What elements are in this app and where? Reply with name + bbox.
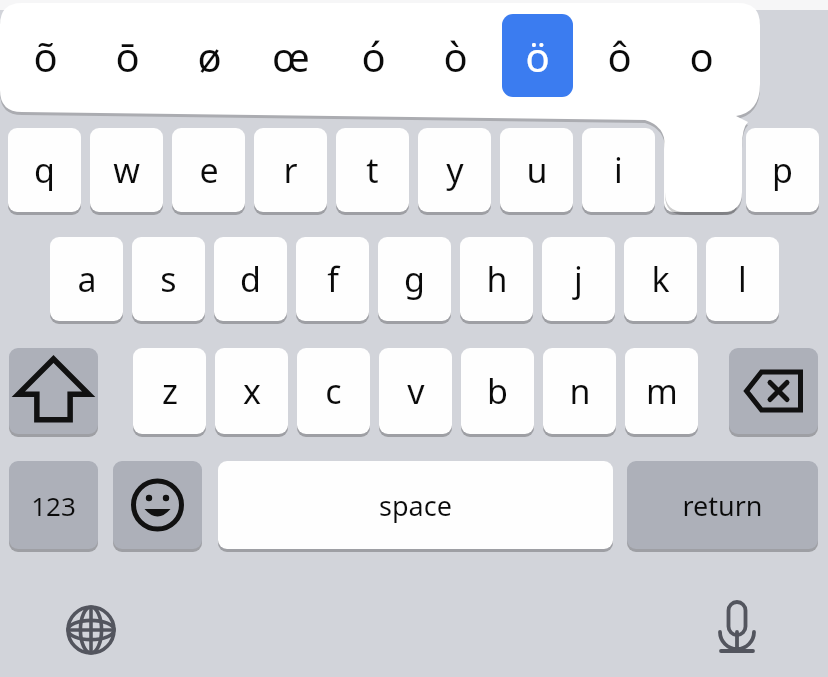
button[interactable]: w [90,128,163,212]
button[interactable]: Backspace [729,348,818,434]
button[interactable]: ò [419,14,491,97]
button[interactable]: l [706,237,779,321]
staticText: c [325,368,342,414]
staticText: v [407,368,425,414]
staticText: õ [33,29,58,83]
staticText: i [614,147,623,193]
staticText: e [199,147,219,193]
button[interactable]: y [418,128,491,212]
staticText: d [240,256,261,302]
staticText: return [682,487,763,524]
button[interactable]: p [746,128,819,212]
staticText: space [379,487,452,524]
staticText: ö [525,29,550,83]
button[interactable]: ø [173,14,245,97]
staticText: r [283,147,298,193]
button[interactable]: t [336,128,409,212]
button[interactable]: ó [337,14,409,97]
staticText: y [446,147,464,193]
button[interactable]: v [379,348,452,434]
button[interactable]: n [543,348,616,434]
button[interactable]: ö [501,14,573,97]
staticText: l [738,256,747,302]
staticText: m [646,368,678,414]
button[interactable]: f [296,237,369,321]
button[interactable]: b [461,348,534,434]
button[interactable]: i [582,128,655,212]
staticText: b [487,368,508,414]
staticText: j [574,256,583,302]
staticText: ô [607,29,632,83]
staticText: œ [272,29,310,83]
staticText: o [689,29,714,83]
button[interactable]: m [625,348,698,434]
staticText: k [651,256,670,302]
button[interactable]: h [460,237,533,321]
button[interactable]: e [172,128,245,212]
button[interactable]: d [214,237,287,321]
staticText: z [162,368,178,414]
staticText: p [772,147,793,193]
button[interactable] [664,128,737,212]
staticText: w [113,147,140,193]
button[interactable]: ô [583,14,655,97]
staticText: 123 [31,488,76,523]
staticText: ò [443,29,468,83]
button[interactable]: a [50,237,123,321]
staticText: ø [197,29,222,83]
staticText: s [160,256,177,302]
button[interactable]: Switch keyboard language [55,594,127,666]
button[interactable]: c [297,348,370,434]
staticText: t [366,147,379,193]
staticText: g [404,256,425,302]
button[interactable]: Dictation [701,592,773,664]
staticText: a [77,256,97,302]
button[interactable]: j [542,237,615,321]
button[interactable]: r [254,128,327,212]
button[interactable]: q [8,128,81,212]
staticText: x [243,368,261,414]
button[interactable]: œ [255,14,327,97]
staticText: ō [115,29,140,83]
button[interactable]: õ [9,14,81,97]
button[interactable] [502,14,573,97]
button[interactable]: o [665,14,737,97]
staticText: h [486,256,508,302]
button[interactable]: k [624,237,697,321]
staticText: ó [361,29,386,83]
button[interactable]: 123 [9,461,98,549]
button[interactable]: ō [91,14,163,97]
staticText: n [569,368,591,414]
staticText: u [526,147,548,193]
button[interactable]: g [378,237,451,321]
button[interactable]: Shift [9,348,98,434]
button[interactable]: s [132,237,205,321]
button[interactable]: u [500,128,573,212]
button[interactable]: space [218,461,613,549]
staticText: q [34,147,55,193]
button[interactable]: z [133,348,206,434]
button[interactable]: Emoji keyboard [113,461,202,549]
button[interactable]: return [627,461,818,549]
button[interactable]: x [215,348,288,434]
staticText: f [327,256,339,302]
